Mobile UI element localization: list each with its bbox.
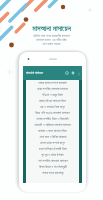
staticText: মাসআলা মাসায়েল (26, 71, 44, 75)
button[interactable]: হজ ও ওমরাহর নিয়ম কানুন (26, 104, 79, 110)
staticText: নামাজ কালাম সম্পর্কে মাসআলা (38, 81, 67, 85)
button[interactable]: নামাজ ভঙ্গের কারণসমূহ (26, 170, 79, 176)
staticText: নামাজ ভঙ্গের কারণসমূহ (42, 171, 64, 175)
button[interactable]: সুদ ঘুষ ও অবৈধ উপার্জন (26, 152, 79, 158)
button[interactable]: পর্দা সম্পর্কিত মাসআলা মাসায়েল (26, 158, 79, 164)
staticText: ব্যবসা বাণিজ্যের ইসলামি বিধান (39, 147, 67, 151)
button[interactable]: জানাজা ও দাফন কাফনের নিয়ম (26, 128, 79, 134)
staticText: কোরবানি ও আকিকার মাসআলা মাসায়েল (34, 123, 71, 127)
button[interactable]: কোরবানি ও আকিকার মাসআলা মাসায়েল (26, 122, 79, 128)
staticText: পর্দা সম্পর্কিত মাসআলা মাসায়েল (38, 159, 68, 163)
button[interactable]: Search (64, 70, 70, 76)
staticText: হজ ও ওমরাহর নিয়ম কানুন (40, 105, 65, 109)
button[interactable]: নামাজ কালাম সম্পর্কে মাসআলা (26, 80, 79, 86)
staticText: জাকাত ফিতরা আদায়ের নিয়ম (39, 99, 66, 103)
button[interactable]: জাকাত ফিতরা আদায়ের নিয়ম (26, 98, 79, 104)
staticText: জানাজা ও দাফন কাফনের নিয়ম (38, 129, 67, 133)
button[interactable]: বিবাহ শাদি সংক্রান্ত মাসআলা মাসায়েল (26, 110, 79, 116)
button[interactable]: মিলাদ কিয়াম ও ঈদে মিলাদুন্নবী (26, 164, 79, 170)
staticText: প্রতিদিন চলার পথের প্রয়োজনীয় মাসআলা মা… (33, 34, 70, 46)
button[interactable]: পবিত্রতা ও অজুর বিধান (26, 92, 79, 98)
staticText: সুদ ঘুষ ও অবৈধ উপার্জন (41, 153, 64, 157)
button[interactable]: Bookmarks (70, 70, 76, 76)
staticText: পবিত্রতা ও অজুর বিধান (42, 93, 63, 97)
staticText: দোয়া দরুদ ও জিকির আজকার (39, 135, 67, 139)
button[interactable]: ব্যবসা বাণিজ্যের ইসলামি বিধান (26, 146, 79, 152)
staticText: হালাল হারাম সম্পর্কে জানুন (40, 141, 65, 145)
button[interactable]: তালাক সম্পর্কিত বিধান ও নিয়মাবলি (26, 116, 79, 122)
button[interactable]: More options (76, 71, 81, 76)
button[interactable]: দোয়া দরুদ ও জিকির আজকার (26, 134, 79, 140)
staticText: মাসআলা মাসায়েল (32, 24, 71, 34)
staticText: রোজা সম্পর্কিত মাসআলা মাসায়েল (37, 87, 68, 91)
staticText: মিলাদ কিয়াম ও ঈদে মিলাদুন্নবী (39, 165, 67, 169)
staticText: তালাক সম্পর্কিত বিধান ও নিয়মাবলি (36, 117, 69, 121)
button[interactable]: রোজা সম্পর্কিত মাসআলা মাসায়েল (26, 86, 79, 92)
staticText: বিবাহ শাদি সংক্রান্ত মাসআলা মাসায়েল (35, 111, 70, 115)
button[interactable]: হালাল হারাম সম্পর্কে জানুন (26, 140, 79, 146)
